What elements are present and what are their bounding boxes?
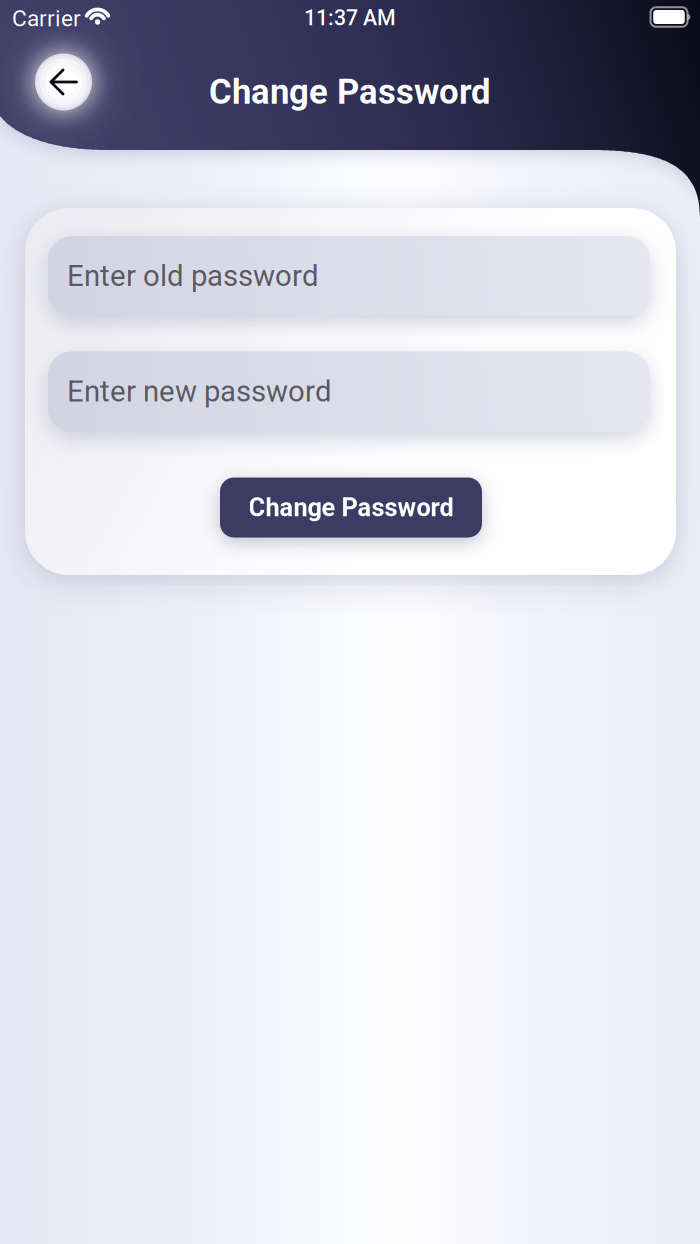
staticText: Enter new password: [67, 375, 332, 408]
staticText: Change Password: [209, 72, 491, 112]
staticText: Enter old password: [67, 259, 319, 293]
button[interactable]: Back: [35, 53, 92, 110]
staticText: Change Password: [248, 493, 453, 522]
textField[interactable]: Enter old password: [48, 236, 650, 316]
staticText: Carrier: [12, 6, 81, 31]
staticText: 11:37 AM: [304, 6, 396, 30]
button[interactable]: Change Password: [220, 477, 482, 537]
textField[interactable]: Enter new password: [48, 351, 650, 431]
